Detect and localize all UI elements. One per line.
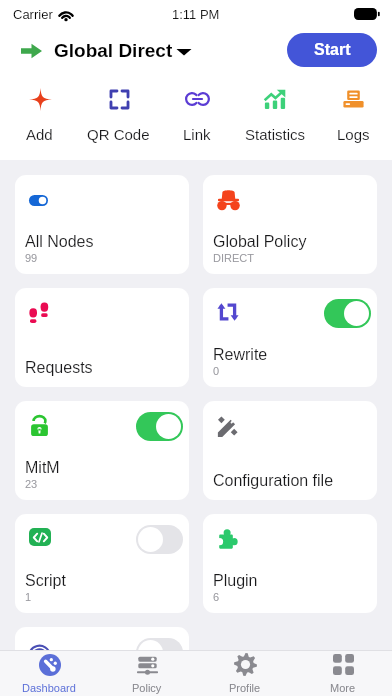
staticText: 99 [25, 252, 38, 264]
staticText: 1 [25, 591, 32, 603]
button[interactable]: Configuration file [203, 401, 377, 500]
staticText: DIRECT [213, 252, 254, 264]
button[interactable]: Requests [15, 288, 189, 387]
staticText: Start [314, 41, 351, 59]
button[interactable]: Toggle off [15, 514, 189, 613]
staticText: 1:11 PM [172, 7, 220, 22]
button[interactable]: Add [0, 84, 79, 145]
staticText: All Nodes [25, 233, 94, 251]
staticText: DNS [25, 668, 59, 686]
button[interactable]: Toggle off [136, 638, 183, 667]
staticText: Profile [229, 682, 261, 694]
staticText: Global Policy [213, 233, 307, 251]
button[interactable]: Dashboard [0, 651, 98, 696]
staticText: Global Direct [54, 40, 173, 61]
staticText: Plugin [213, 572, 258, 590]
staticText: 0 [213, 365, 220, 377]
staticText: Add [26, 126, 53, 143]
staticText: QR Code [87, 126, 150, 143]
button[interactable]: Toggle off [15, 627, 189, 696]
staticText: Requests [25, 359, 93, 377]
button[interactable]: All Nodes [15, 175, 189, 274]
staticText: Policy [132, 682, 162, 694]
button[interactable]: Policy [98, 651, 196, 696]
staticText: 6 [213, 591, 220, 603]
button[interactable]: Link [158, 84, 236, 145]
staticText: More [330, 682, 356, 694]
button[interactable]: Toggle on [203, 288, 377, 387]
button[interactable]: QR Code [79, 84, 158, 145]
staticText: Link [183, 126, 211, 143]
staticText: Configuration file [213, 472, 334, 490]
button[interactable]: Statistics [236, 84, 314, 145]
staticText: Logs [337, 126, 370, 143]
staticText: Statistics [245, 126, 306, 143]
button[interactable]: Toggle off [136, 525, 183, 554]
staticText: Dashboard [22, 682, 76, 694]
staticText: 23 [25, 478, 38, 490]
button[interactable]: Global Policy [203, 175, 377, 274]
staticText: Script [25, 572, 66, 590]
button[interactable]: Plugin [203, 514, 377, 613]
button[interactable]: More [294, 651, 392, 696]
staticText: Carrier [13, 7, 53, 22]
button[interactable]: Profile [196, 651, 294, 696]
staticText: Rewrite [213, 346, 268, 364]
button[interactable]: Logs [314, 84, 392, 145]
button[interactable]: Start [287, 33, 377, 67]
staticText: MitM [25, 459, 60, 477]
button[interactable]: Global Direct [14, 40, 192, 61]
button[interactable]: Toggle on [324, 299, 371, 328]
button[interactable]: Toggle on [15, 401, 189, 500]
button[interactable]: Toggle on [136, 412, 183, 441]
